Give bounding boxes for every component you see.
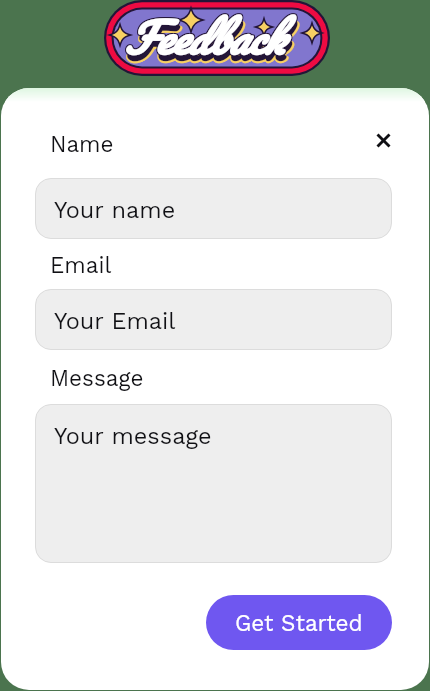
staticText: Feedback (125, 0, 284, 73)
button[interactable]: Get Started (206, 595, 392, 650)
staticText: Feedback (123, 2, 282, 75)
button[interactable]: Your name (35, 178, 392, 239)
staticText: Feedback (124, 2, 283, 75)
staticText: Your message (54, 422, 212, 450)
staticText: Feedback (125, 7, 284, 80)
staticText: Feedback (124, 0, 283, 73)
staticText: Feedback (125, 1, 284, 74)
button[interactable]: Your message (35, 404, 392, 563)
staticText: Feedback (124, 8, 283, 81)
staticText: Feedback (125, 2, 284, 75)
button[interactable]: Your Email (35, 289, 392, 350)
staticText: Name (50, 131, 114, 157)
staticText: Feedback (125, 9, 284, 82)
staticText: Get Started (235, 610, 363, 636)
staticText: Your Email (54, 307, 176, 335)
staticText: Email (50, 252, 112, 278)
staticText: Your name (54, 196, 176, 224)
staticText: Feedback (127, 8, 286, 81)
staticText: Feedback (123, 0, 282, 73)
button[interactable]: Close (369, 126, 397, 154)
staticText: Feedback (123, 1, 282, 74)
staticText: Message (50, 365, 144, 391)
staticText: Feedback (125, 7, 284, 80)
staticText: Feedback (124, 1, 283, 74)
